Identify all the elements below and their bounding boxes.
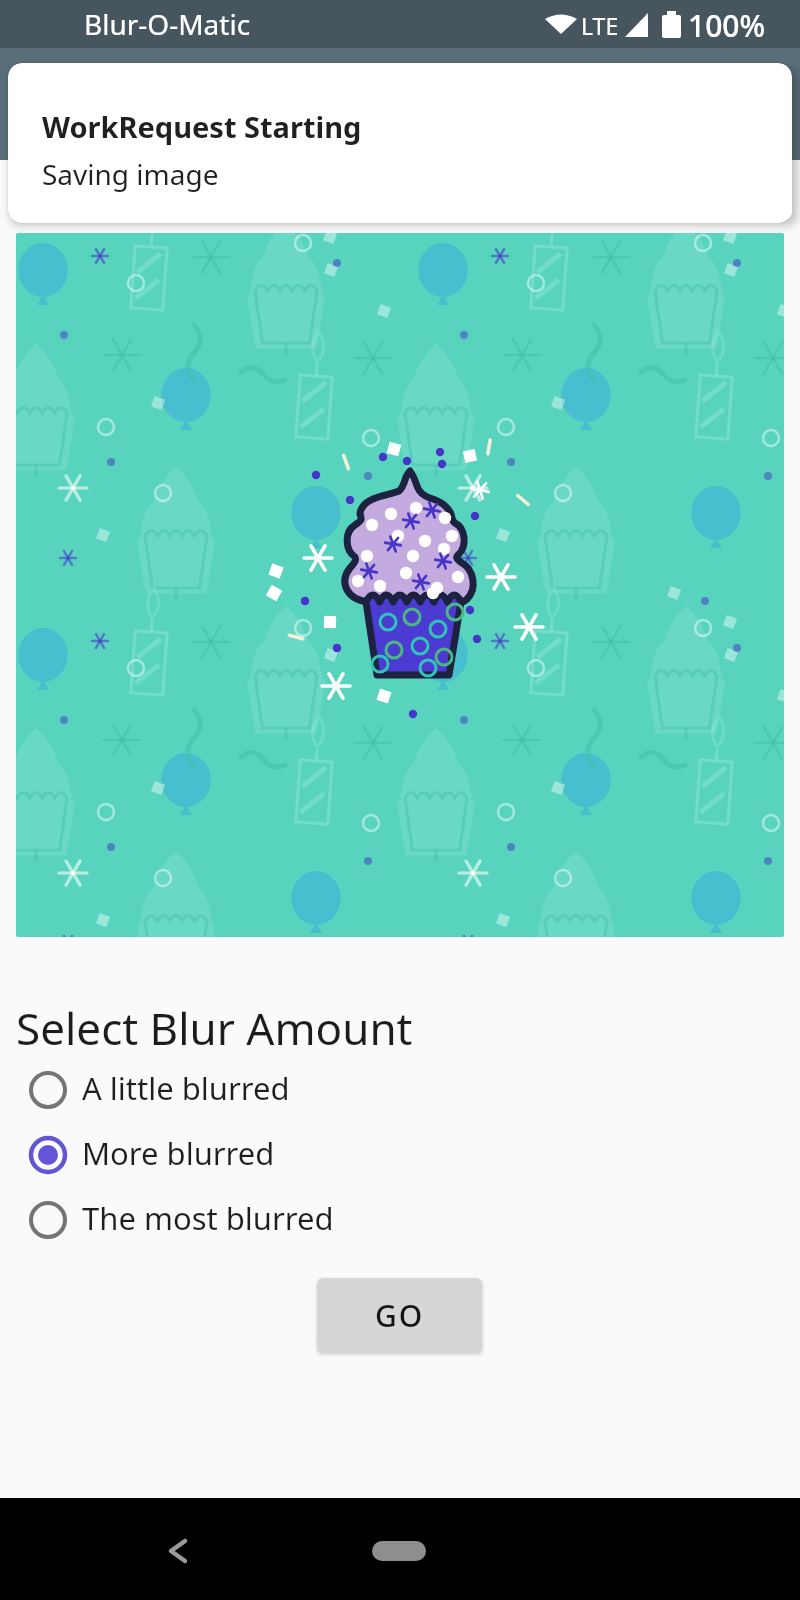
- staticText: A little blurred: [82, 1067, 290, 1109]
- button[interactable]: GO: [317, 1278, 482, 1353]
- staticText: GO: [375, 1295, 425, 1336]
- staticText: Saving image: [42, 155, 219, 193]
- button[interactable]: [156, 1531, 196, 1571]
- staticText: LTE: [581, 10, 619, 41]
- button[interactable]: More blurred: [28, 1131, 275, 1175]
- staticText: The most blurred: [82, 1197, 334, 1239]
- button[interactable]: The most blurred: [28, 1196, 334, 1240]
- button[interactable]: [372, 1541, 426, 1561]
- staticText: WorkRequest Starting: [42, 107, 362, 146]
- staticText: Blur-O-Matic: [84, 5, 251, 43]
- button[interactable]: A little blurred: [28, 1066, 290, 1110]
- staticText: 100%: [688, 5, 766, 46]
- staticText: Select Blur Amount: [16, 998, 413, 1058]
- staticText: More blurred: [82, 1132, 275, 1174]
